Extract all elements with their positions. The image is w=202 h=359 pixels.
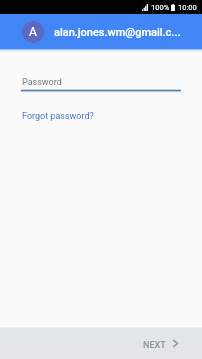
staticText: Password bbox=[22, 77, 62, 88]
button[interactable] bbox=[21, 89, 181, 93]
other: Battery full bbox=[171, 4, 175, 11]
staticText: 10:00 bbox=[178, 3, 197, 12]
staticText: Forgot password? bbox=[22, 111, 94, 122]
button[interactable]: A bbox=[0, 21, 202, 43]
staticText: NEXT bbox=[143, 340, 166, 351]
staticText: 100% bbox=[151, 3, 170, 12]
staticText: A bbox=[29, 25, 37, 39]
button[interactable]: NEXT bbox=[131, 333, 202, 354]
button[interactable]: Forgot password? bbox=[22, 111, 94, 122]
staticText: alan.jones.wm@gmail.c... bbox=[54, 26, 184, 39]
other: Mobile signal strength bbox=[142, 4, 148, 11]
